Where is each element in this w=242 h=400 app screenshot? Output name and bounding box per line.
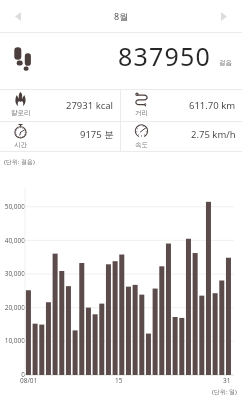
staticText: 837950 (118, 39, 212, 73)
staticText: 8월 (114, 10, 129, 22)
staticText: 거리 (135, 109, 148, 117)
button[interactable]: 거리 (121, 90, 242, 121)
staticText: 칼로리 (11, 109, 31, 117)
staticText: (단위: 일) (212, 388, 237, 396)
staticText: 걸음 (219, 59, 232, 67)
staticText: 10,000 (0, 336, 25, 345)
button[interactable]: 837950 (0, 33, 242, 89)
staticText: 27931 kcal (66, 99, 114, 112)
staticText: 31 (223, 376, 231, 385)
staticText: 08/01 (20, 376, 38, 385)
button[interactable]: 속도 (121, 122, 242, 151)
staticText: 15 (115, 376, 123, 385)
button[interactable]: Previous month (7, 5, 29, 27)
staticText: 0 (0, 370, 25, 379)
staticText: 시간 (14, 141, 27, 149)
staticText: 50,000 (0, 202, 25, 211)
button[interactable]: 칼로리 (0, 90, 120, 121)
staticText: 30,000 (0, 269, 25, 278)
staticText: 40,000 (0, 236, 25, 245)
staticText: 9175 분 (80, 128, 114, 141)
staticText: 611.70 km (189, 99, 236, 112)
staticText: 20,000 (0, 303, 25, 312)
button[interactable]: Next month (213, 5, 235, 27)
staticText: (단위: 걸음) (4, 158, 35, 166)
staticText: 속도 (135, 141, 148, 149)
staticText: 2.75 km/h (191, 128, 236, 141)
button[interactable]: 시간 (0, 122, 120, 151)
